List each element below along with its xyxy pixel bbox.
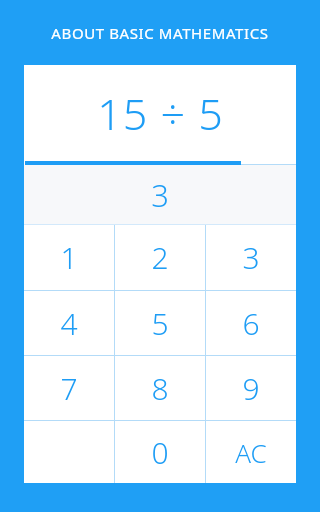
button[interactable]: 6 [206, 291, 296, 355]
button[interactable]: 3 [206, 225, 296, 290]
staticText: 5 [151, 303, 169, 344]
staticText: 15 ÷ 5 [97, 84, 224, 143]
staticText: 4 [60, 303, 78, 344]
staticText: 1 [60, 237, 78, 278]
staticText: ABOUT BASIC MATHEMATICS [51, 23, 269, 43]
staticText: AC [235, 435, 267, 470]
button[interactable]: 9 [206, 356, 296, 420]
button[interactable]: AC [206, 421, 296, 483]
staticText: 2 [151, 237, 169, 278]
button[interactable]: 4 [24, 291, 114, 355]
staticText: 6 [242, 303, 260, 344]
button[interactable]: 0 [115, 421, 205, 483]
staticText: 9 [242, 368, 260, 409]
staticText: 0 [151, 432, 169, 473]
staticText: 7 [60, 368, 78, 409]
staticText: 3 [242, 237, 260, 278]
button[interactable]: 7 [24, 356, 114, 420]
staticText: 3 [151, 174, 169, 216]
staticText: 8 [151, 368, 169, 409]
button[interactable]: 8 [115, 356, 205, 420]
button[interactable]: 5 [115, 291, 205, 355]
button[interactable]: 2 [115, 225, 205, 290]
button[interactable]: 1 [24, 225, 114, 290]
